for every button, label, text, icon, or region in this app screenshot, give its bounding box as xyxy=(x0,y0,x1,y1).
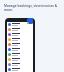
button[interactable] xyxy=(7,47,33,52)
button[interactable] xyxy=(7,37,33,42)
button[interactable] xyxy=(7,22,33,27)
button[interactable] xyxy=(7,32,33,37)
button[interactable] xyxy=(7,62,33,67)
staticText: Manage bookings, view invoices & more. xyxy=(4,4,62,12)
button[interactable] xyxy=(7,27,33,32)
button[interactable] xyxy=(7,57,33,62)
button[interactable] xyxy=(7,52,33,57)
button[interactable]: App icon xyxy=(27,18,33,24)
button[interactable] xyxy=(7,67,33,72)
button[interactable] xyxy=(7,42,33,47)
